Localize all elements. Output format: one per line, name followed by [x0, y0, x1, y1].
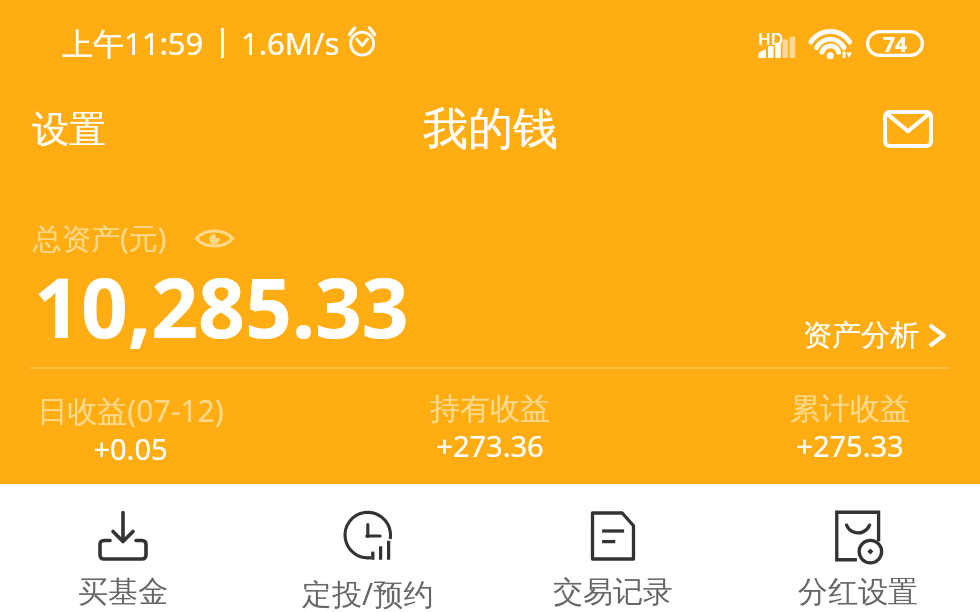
- staticText: 买基金: [78, 573, 168, 611]
- button[interactable]: 交易记录: [490, 484, 735, 612]
- button[interactable]: Messages: [876, 97, 940, 161]
- staticText: 74: [883, 30, 908, 57]
- staticText: HD: [758, 27, 784, 50]
- staticText: 累计收益: [790, 390, 910, 428]
- staticText: 总资产(元): [33, 218, 167, 258]
- staticText: 资产分析: [803, 317, 919, 354]
- button[interactable]: 定投/预约: [245, 484, 490, 612]
- staticText: 定投/预约: [302, 573, 434, 612]
- button[interactable]: 设置: [14, 91, 126, 167]
- button[interactable]: Toggle balance visibility: [192, 220, 236, 256]
- staticText: +273.36: [436, 426, 544, 465]
- staticText: 分红设置: [798, 573, 918, 611]
- staticText: 1.6M/s: [241, 22, 340, 64]
- staticText: 设置: [32, 106, 106, 153]
- button[interactable]: 分红设置: [735, 484, 980, 612]
- button[interactable]: 资产分析: [803, 317, 946, 354]
- staticText: +275.33: [796, 426, 904, 465]
- staticText: 交易记录: [553, 573, 673, 611]
- staticText: 持有收益: [430, 390, 550, 428]
- staticText: 上午11:59: [62, 22, 204, 64]
- button[interactable]: 买基金: [0, 484, 245, 612]
- staticText: 我的钱: [423, 101, 558, 158]
- staticText: 10,285.33: [34, 250, 409, 362]
- staticText: 日收益(07-12): [37, 390, 224, 431]
- staticText: +0.05: [93, 429, 168, 468]
